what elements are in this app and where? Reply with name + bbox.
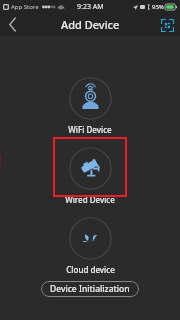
staticText: Device Initialization [50, 283, 130, 295]
button[interactable]: Scan QR code [157, 15, 177, 35]
button[interactable]: WiFi Device [53, 75, 127, 137]
staticText: Wired Device [65, 194, 115, 205]
staticText: 9:23 AM [77, 2, 104, 12]
button[interactable]: Back [0, 13, 24, 36]
staticText: App Store [11, 3, 39, 11]
staticText: 95% [152, 3, 164, 11]
button[interactable]: Device Initialization [41, 281, 139, 297]
button[interactable]: Cloud device [53, 215, 127, 277]
button[interactable]: Wired Device [53, 145, 127, 207]
staticText: WiFi Device [68, 124, 112, 135]
staticText: Cloud device [66, 264, 115, 275]
staticText: Add Device [61, 17, 120, 32]
